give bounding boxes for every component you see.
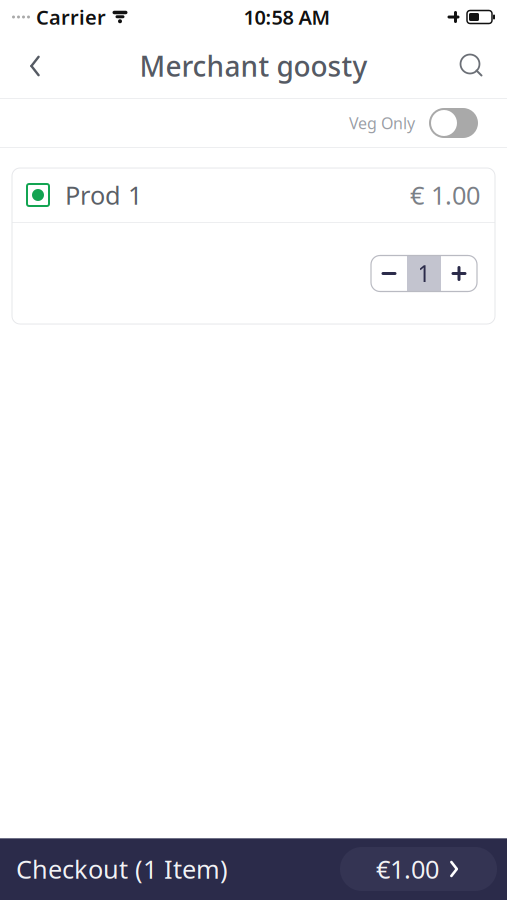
staticText: Checkout (1 Item): [16, 852, 228, 886]
staticText: Merchant goosty: [139, 47, 367, 85]
staticText: 10:58 AM: [243, 4, 330, 30]
staticText: € 1.00: [410, 178, 480, 212]
button[interactable]: Veg Only: [345, 100, 482, 146]
staticText: Prod 1: [65, 178, 142, 212]
staticText: €1.00: [376, 852, 439, 886]
button[interactable]: Decrease quantity: [371, 255, 407, 291]
staticText: Veg Only: [349, 112, 415, 134]
staticText: 1: [417, 258, 430, 288]
button[interactable]: Search: [445, 39, 499, 93]
button[interactable]: Increase quantity: [441, 255, 477, 291]
staticText: Carrier: [36, 4, 106, 30]
button[interactable]: Back: [8, 39, 62, 93]
button[interactable]: Checkout (1 Item): [0, 838, 507, 900]
